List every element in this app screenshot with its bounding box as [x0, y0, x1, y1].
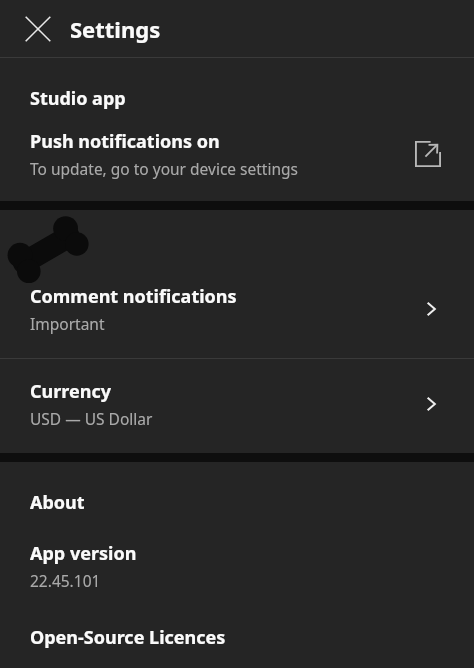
staticText: Push notifications on [30, 129, 220, 154]
staticText: App version [30, 541, 137, 566]
button[interactable]: Open device settings [408, 134, 448, 174]
button[interactable]: Comment notifications [0, 284, 474, 358]
button[interactable]: Push notifications on [0, 111, 474, 201]
staticText: USD — US Dollar [30, 408, 153, 429]
staticText: To update, go to your device settings [30, 158, 298, 179]
staticText: Currency [30, 379, 111, 404]
staticText: Studio app [30, 86, 126, 111]
staticText: Important [30, 313, 105, 334]
staticText: Settings [70, 14, 161, 44]
staticText: Open-Source Licences [30, 625, 226, 648]
staticText: 22.45.101 [30, 570, 101, 591]
button[interactable]: App version [0, 515, 474, 617]
button[interactable]: Open-Source Licences [0, 617, 474, 668]
button[interactable]: Close [16, 7, 60, 51]
staticText: Comment notifications [30, 284, 237, 309]
staticText: About [30, 490, 85, 515]
button[interactable]: Currency [0, 359, 474, 453]
